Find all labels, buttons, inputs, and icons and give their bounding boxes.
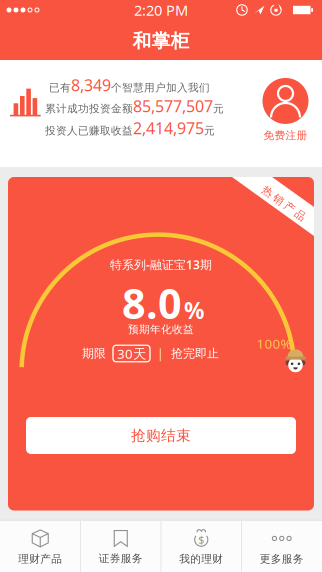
staticText: 30天	[117, 345, 146, 362]
button[interactable]: 证券服务	[80, 521, 161, 572]
staticText: %	[184, 295, 204, 325]
button[interactable]: 抢购结束	[26, 417, 296, 454]
staticText: 抢购结束	[131, 426, 191, 444]
staticText: 元	[204, 124, 215, 137]
staticText: 热销产品	[258, 197, 310, 210]
staticText: 抢完即止	[171, 346, 219, 361]
staticText: 更多服务	[260, 552, 304, 565]
staticText: 元	[213, 102, 224, 115]
staticText: 已有	[49, 81, 71, 94]
staticText: 我的理财	[179, 552, 223, 565]
staticText: $	[198, 533, 204, 547]
staticText: 免费注册	[263, 129, 307, 142]
staticText: 投资人已赚取收益	[45, 124, 133, 137]
staticText: |	[157, 345, 164, 361]
button[interactable]: 免费注册	[262, 78, 308, 142]
staticText: 8,349	[71, 74, 111, 96]
staticText: 特系列-融证宝13期	[110, 256, 212, 272]
button[interactable]: $	[161, 521, 241, 572]
staticText: 期限	[82, 346, 106, 361]
staticText: 预期年化收益	[128, 323, 194, 336]
staticText: 累计成功投资金额	[45, 102, 133, 115]
button[interactable]: 更多服务	[241, 521, 322, 572]
staticText: 8.0	[122, 276, 182, 330]
staticText: 证券服务	[99, 552, 143, 565]
staticText: 100%	[256, 335, 291, 352]
button[interactable]: 理财产品	[0, 521, 80, 572]
staticText: 2,414,975	[133, 117, 204, 139]
staticText: 和掌柜	[132, 29, 189, 52]
staticText: 2:20 PM	[134, 0, 188, 20]
staticText: 85,577,507	[133, 95, 213, 117]
staticText: 理财产品	[18, 552, 62, 565]
staticText: 个智慧用户加入我们	[111, 81, 210, 94]
